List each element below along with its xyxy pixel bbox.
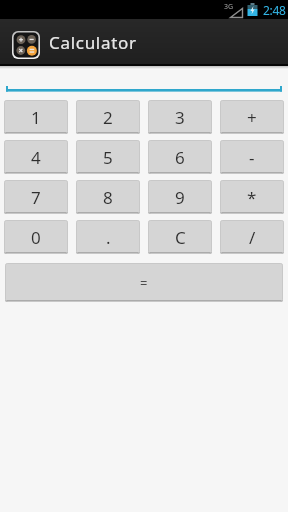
button[interactable]: * — [220, 180, 284, 214]
staticText: = — [140, 274, 148, 292]
staticText: / — [249, 226, 256, 249]
staticText: 2:48 — [263, 2, 286, 18]
button[interactable]: 0 — [4, 220, 68, 254]
button[interactable]: 1 — [4, 100, 68, 134]
staticText: 2 — [103, 106, 113, 129]
button[interactable]: 6 — [148, 140, 212, 174]
staticText: - — [249, 146, 255, 169]
button[interactable]: 2 — [76, 100, 140, 134]
button[interactable]: = — [5, 263, 283, 302]
staticText: 3G — [224, 2, 234, 12]
button[interactable]: / — [220, 220, 284, 254]
staticText: 9 — [175, 186, 185, 209]
button[interactable]: C — [148, 220, 212, 254]
staticText: 4 — [31, 146, 41, 169]
staticText: 6 — [175, 146, 185, 169]
staticText: 5 — [103, 146, 113, 169]
button[interactable]: 7 — [4, 180, 68, 214]
staticText: Calculator — [49, 31, 137, 54]
staticText: . — [106, 226, 111, 249]
button[interactable]: 9 — [148, 180, 212, 214]
button[interactable]: + — [220, 100, 284, 134]
button[interactable] — [0, 69, 288, 92]
staticText: + — [247, 106, 257, 129]
button[interactable]: 8 — [76, 180, 140, 214]
staticText: 1 — [31, 106, 41, 129]
button[interactable]: 5 — [76, 140, 140, 174]
button[interactable]: - — [220, 140, 284, 174]
staticText: C — [175, 226, 186, 249]
staticText: 7 — [31, 186, 41, 209]
staticText: 0 — [31, 226, 41, 249]
button[interactable]: 3 — [148, 100, 212, 134]
button[interactable]: . — [76, 220, 140, 254]
staticText: 8 — [103, 186, 113, 209]
staticText: * — [247, 186, 257, 209]
button[interactable]: 4 — [4, 140, 68, 174]
staticText: 3 — [175, 106, 185, 129]
